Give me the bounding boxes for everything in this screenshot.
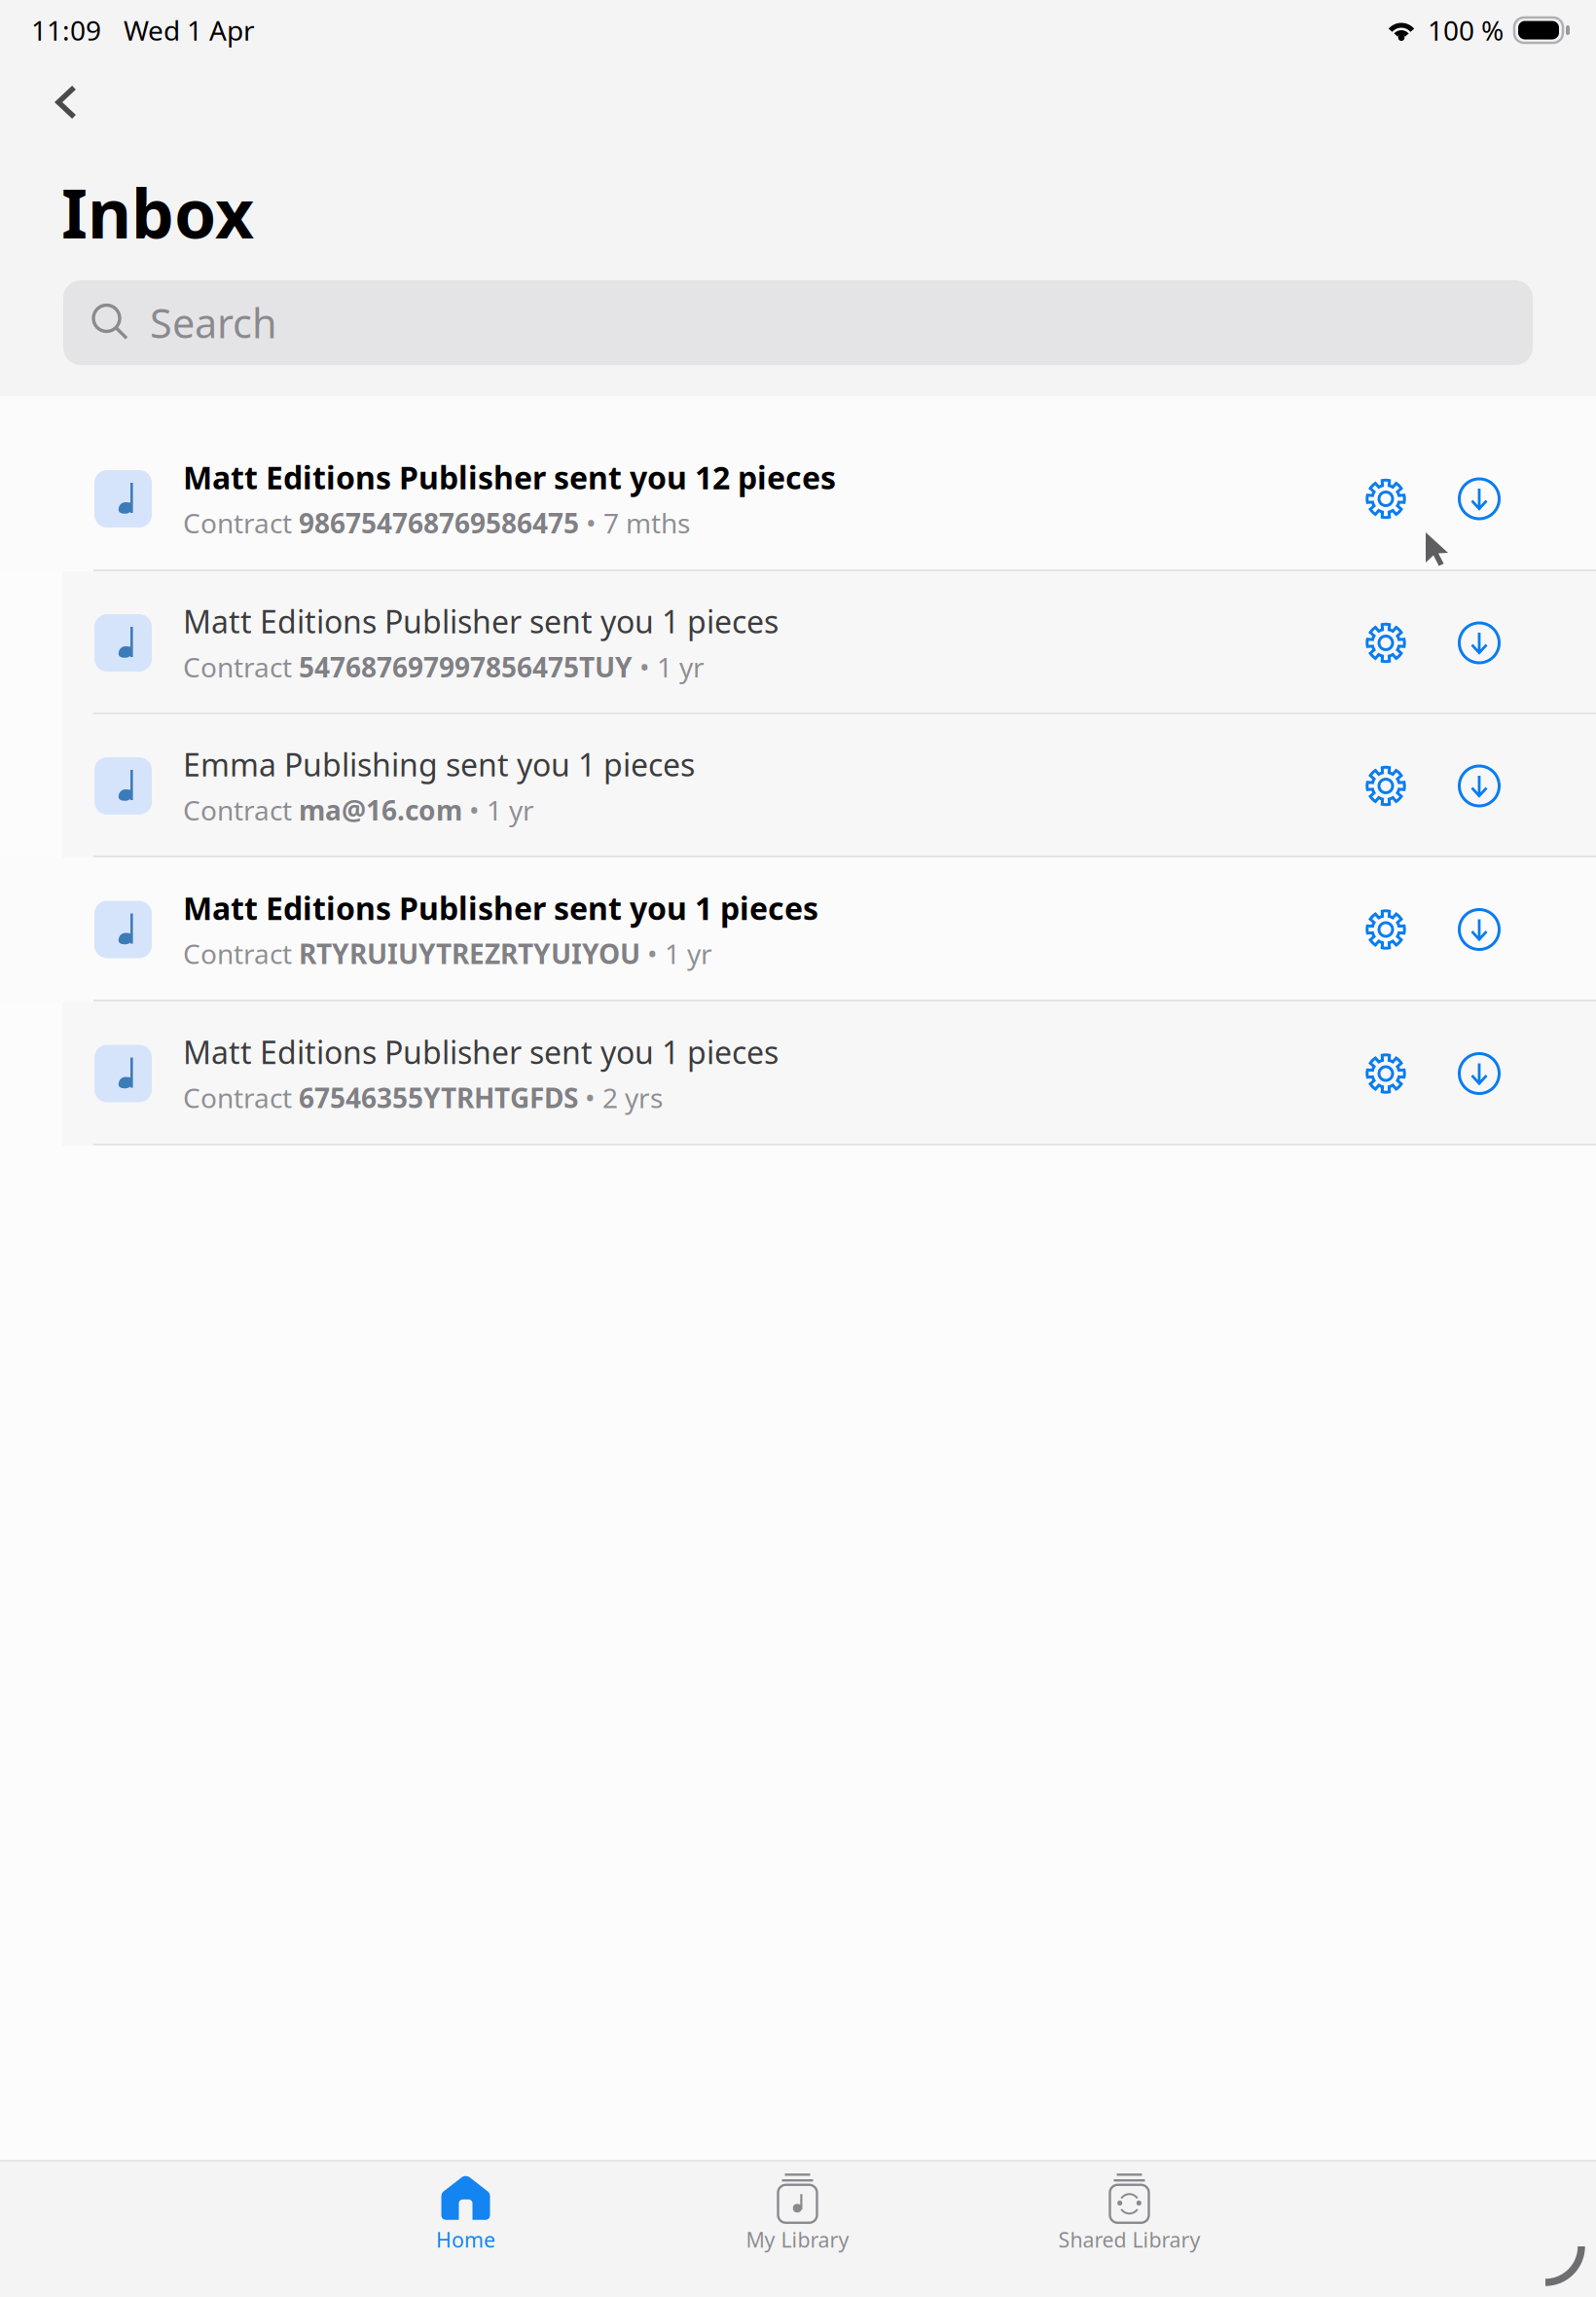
staticText: Contract <box>183 649 299 685</box>
staticText: Matt Editions Publisher sent you 1 piece… <box>183 1031 779 1073</box>
staticText: My Library <box>746 2226 849 2253</box>
button[interactable]: Home <box>300 2162 632 2297</box>
staticText: 67546355YTRHTGFDS <box>299 1080 578 1116</box>
staticText: Contract <box>183 792 299 828</box>
button[interactable]: Matt Editions Publisher sent you 1 piece… <box>0 1002 1596 1146</box>
staticText: 986754768769586475 <box>299 505 579 541</box>
staticText: 547687697997856475TUY <box>299 649 633 685</box>
staticText: Matt Editions Publisher sent you 1 piece… <box>183 601 779 642</box>
staticText: Emma Publishing sent you 1 pieces <box>183 744 695 785</box>
staticText: Inbox <box>61 167 254 257</box>
staticText: 11:09 <box>31 12 101 48</box>
staticText: Home <box>436 2226 495 2253</box>
staticText: Matt Editions Publisher sent you 1 piece… <box>183 887 818 929</box>
staticText: RTYRUIUYTREZRTYUIYOU <box>299 936 640 972</box>
staticText: • 1 yr <box>640 936 712 972</box>
staticText: Contract <box>183 936 299 972</box>
button[interactable]: Emma Publishing sent you 1 pieces <box>0 714 1596 857</box>
button[interactable]: Matt Editions Publisher sent you 1 piece… <box>0 571 1596 714</box>
staticText: • 7 mths <box>579 505 690 541</box>
staticText: Contract <box>183 1080 299 1116</box>
staticText: • 1 yr <box>462 792 534 828</box>
staticText: Wed 1 Apr <box>124 12 255 48</box>
staticText: • 2 yrs <box>578 1080 663 1116</box>
staticText: Search <box>150 296 277 349</box>
button[interactable]: Matt Editions Publisher sent you 12 piec… <box>0 396 1596 571</box>
staticText: Matt Editions Publisher sent you 12 piec… <box>183 457 836 498</box>
button[interactable]: Search <box>63 280 1533 365</box>
staticText: Shared Library <box>1058 2226 1200 2253</box>
button[interactable]: Matt Editions Publisher sent you 1 piece… <box>0 857 1596 1002</box>
button[interactable]: Back <box>47 76 91 128</box>
staticText: Contract <box>183 505 299 541</box>
button[interactable]: My Library <box>632 2162 963 2297</box>
staticText: ma@16.com <box>299 792 462 828</box>
button[interactable]: Shared Library <box>963 2162 1295 2297</box>
staticText: • 1 yr <box>633 649 705 685</box>
staticText: 100 % <box>1428 12 1504 48</box>
